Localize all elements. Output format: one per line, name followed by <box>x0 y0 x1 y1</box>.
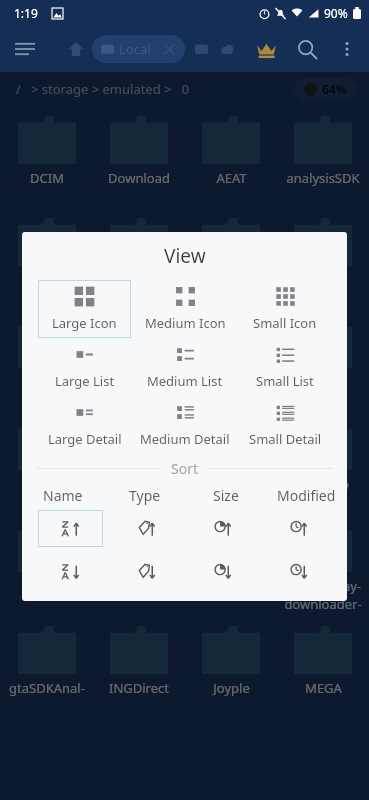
staticText: INGDirect <box>109 679 169 697</box>
button[interactable]: Small Detail <box>239 396 331 454</box>
button[interactable]: Small Icon <box>239 280 331 338</box>
staticText: Sort <box>171 459 198 478</box>
staticText: Documents <box>104 475 175 493</box>
button[interactable]: Cloud storage <box>214 36 240 62</box>
staticText: 1:19 <box>14 5 38 21</box>
staticText: MEGA <box>305 679 342 697</box>
staticText: Joyple <box>213 679 250 697</box>
button[interactable]: Sort by Type ascending <box>115 510 179 547</box>
staticText: Large Icon <box>52 314 117 332</box>
button[interactable]: Sort by Name descending <box>38 553 103 590</box>
staticText: b <box>43 271 51 289</box>
button[interactable]: Network storage <box>188 36 214 62</box>
staticText: Modified <box>277 486 336 505</box>
button[interactable]: Sort by Size descending <box>191 553 255 590</box>
staticText: Small List <box>256 372 314 390</box>
button[interactable]: Medium List <box>139 338 231 396</box>
button[interactable]: Large Detail <box>38 396 131 454</box>
staticText: analysisSDK <box>286 169 360 187</box>
staticText: gtaSDKAnal- <box>9 679 85 697</box>
staticText: View <box>164 243 206 269</box>
button[interactable]: Medium Icon <box>139 280 231 338</box>
staticText: Medium Icon <box>145 314 226 332</box>
button[interactable]: More options <box>328 30 366 68</box>
staticText: Small Detail <box>249 430 322 448</box>
staticText: Local <box>119 40 151 58</box>
staticText: Name <box>43 486 83 505</box>
staticText: google-play- downloader- <box>284 577 362 613</box>
button[interactable]: Medium Detail <box>139 396 231 454</box>
staticText: DCIM <box>30 169 64 187</box>
button[interactable]: Sort by Size ascending <box>191 510 255 547</box>
staticText: 90% <box>324 5 348 21</box>
staticText: 64% <box>322 81 347 97</box>
staticText: Large List <box>55 372 115 390</box>
staticText: Large Detail <box>48 430 122 448</box>
button[interactable]: Large List <box>38 338 131 396</box>
staticText: mb <box>313 373 334 391</box>
staticText: Download <box>108 169 170 187</box>
button[interactable]: Search <box>286 28 328 70</box>
button[interactable]: Large Icon <box>38 280 131 338</box>
button[interactable]: Home <box>62 35 90 63</box>
staticText: / > storage > emulated > 0 <box>16 80 190 98</box>
staticText: golemon <box>204 577 259 595</box>
button[interactable]: Small List <box>239 338 331 396</box>
button[interactable]: Sort by Modified ascending <box>267 510 331 547</box>
staticText: data <box>33 475 61 493</box>
staticText: AEAT <box>216 169 247 187</box>
staticText: Type <box>129 486 161 505</box>
button[interactable]: Local <box>92 35 185 63</box>
staticText: Gif2Video <box>109 577 169 595</box>
staticText: epsxe <box>213 475 249 493</box>
staticText: Small Icon <box>253 314 317 332</box>
button[interactable]: Upgrade to premium <box>246 29 286 69</box>
staticText: Medium List <box>147 372 223 390</box>
button[interactable]: Sort by Type descending <box>115 553 179 590</box>
staticText: FaceApp <box>297 475 349 493</box>
button[interactable]: Open navigation menu <box>5 29 45 69</box>
button[interactable]: Sort by Modified descending <box>267 553 331 590</box>
staticText: Games <box>25 577 68 595</box>
staticText: Size <box>213 486 239 505</box>
button[interactable]: Sort by Name ascending <box>38 510 103 547</box>
staticText: Medium Detail <box>140 430 230 448</box>
